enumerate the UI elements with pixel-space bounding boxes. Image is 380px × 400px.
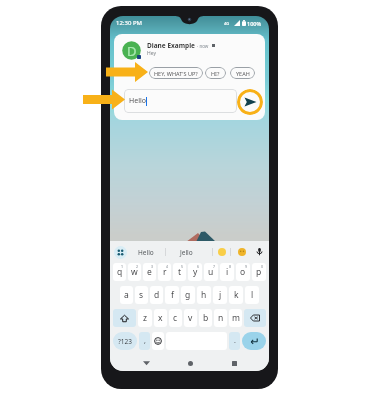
staticText: D (127, 42, 137, 60)
button[interactable]: f (165, 286, 179, 304)
staticText: u (208, 266, 214, 278)
button[interactable]: j (213, 286, 227, 304)
button[interactable]: Gboard menu (114, 246, 127, 259)
button[interactable]: t (173, 263, 186, 281)
button[interactable]: l (245, 286, 259, 304)
staticText: i (226, 266, 229, 278)
staticText: 1 (121, 264, 124, 269)
other: Shift (120, 314, 129, 323)
staticText: 4 (166, 264, 169, 269)
staticText: q (117, 266, 123, 278)
staticText: o (240, 266, 246, 278)
staticText: Hello (129, 96, 146, 106)
staticText: n (218, 312, 224, 324)
staticText: s (139, 289, 144, 301)
staticText: 4G (224, 21, 230, 26)
button[interactable]: Enter (242, 332, 266, 350)
button[interactable]: Shift (113, 309, 136, 327)
button[interactable]: Back (138, 355, 154, 371)
staticText: . (234, 336, 236, 346)
staticText: , (144, 336, 146, 346)
staticText: YEAH (236, 70, 250, 77)
button[interactable]: r (158, 263, 171, 281)
staticText: · now (197, 43, 209, 49)
staticText: w (131, 266, 138, 278)
button[interactable]: z (138, 309, 152, 327)
button[interactable]: HEY, WHAT'S UP? (149, 67, 203, 79)
staticText: 6 (197, 264, 200, 269)
staticText: j (219, 289, 222, 301)
button[interactable]: , (139, 332, 150, 350)
staticText: Diane Example (147, 41, 195, 50)
staticText: Hello (138, 248, 154, 257)
button[interactable]: a (120, 286, 133, 304)
button[interactable]: w (128, 263, 141, 281)
button[interactable]: m (229, 309, 242, 327)
button[interactable]: g (181, 286, 195, 304)
staticText: r (163, 266, 167, 278)
button[interactable]: p (252, 263, 266, 281)
staticText: 7 (213, 264, 216, 269)
button[interactable]: Home (182, 355, 198, 371)
button[interactable]: h (197, 286, 211, 304)
button[interactable]: . (229, 332, 240, 350)
staticText: ?123 (118, 337, 132, 346)
button[interactable]: YEAH (230, 67, 255, 79)
staticText: 0 (261, 264, 264, 269)
button[interactable]: ?123 (113, 332, 137, 350)
staticText: t (178, 266, 182, 278)
button[interactable]: Recents (226, 355, 242, 371)
staticText: b (203, 312, 209, 324)
staticText: 3 (151, 264, 154, 269)
button[interactable]: k (229, 286, 243, 304)
staticText: l (251, 289, 254, 301)
button[interactable]: Hello (135, 241, 157, 263)
staticText: 2 (136, 264, 139, 269)
button[interactable]: e (143, 263, 156, 281)
other: Backspace (250, 313, 260, 323)
button[interactable]: n (214, 309, 227, 327)
button[interactable]: q (113, 263, 126, 281)
staticText: m (232, 312, 240, 324)
button[interactable]: v (184, 309, 197, 327)
staticText: h (201, 289, 207, 301)
button[interactable]: o (236, 263, 250, 281)
staticText: p (256, 266, 262, 278)
staticText: 9 (245, 264, 248, 269)
staticText: g (185, 289, 191, 301)
button[interactable]: Jello (175, 241, 197, 263)
staticText: f (171, 289, 174, 301)
button[interactable]: HI? (205, 67, 226, 79)
button[interactable]: Hello (124, 89, 237, 113)
button[interactable]: x (154, 309, 167, 327)
staticText: z (143, 312, 147, 324)
staticText: k (234, 289, 239, 301)
button[interactable]: d (150, 286, 163, 304)
button[interactable]: Backspace (244, 309, 266, 327)
staticText: 12:30 PM (116, 19, 142, 27)
staticText: v (188, 312, 193, 324)
staticText: x (158, 312, 163, 324)
other: Emoji (154, 337, 162, 345)
button[interactable]: i (220, 263, 234, 281)
staticText: d (154, 289, 160, 301)
staticText: HI? (211, 70, 220, 77)
staticText: Jello (180, 248, 193, 257)
button[interactable]: u (204, 263, 218, 281)
staticText: Hey (147, 50, 156, 57)
button[interactable]: y (188, 263, 202, 281)
staticText: a (124, 289, 129, 301)
button[interactable]: c (169, 309, 182, 327)
button[interactable]: Send (237, 89, 263, 115)
button[interactable]: Emoji (152, 332, 164, 350)
staticText: y (193, 266, 198, 278)
staticText: HEY, WHAT'S UP? (154, 70, 198, 77)
staticText: e (147, 266, 152, 278)
button[interactable]: b (199, 309, 212, 327)
staticText: c (173, 312, 178, 324)
button[interactable]: s (135, 286, 148, 304)
staticText: 8 (229, 264, 232, 269)
staticText: 100% (247, 20, 262, 27)
other: Voice input (255, 247, 264, 256)
